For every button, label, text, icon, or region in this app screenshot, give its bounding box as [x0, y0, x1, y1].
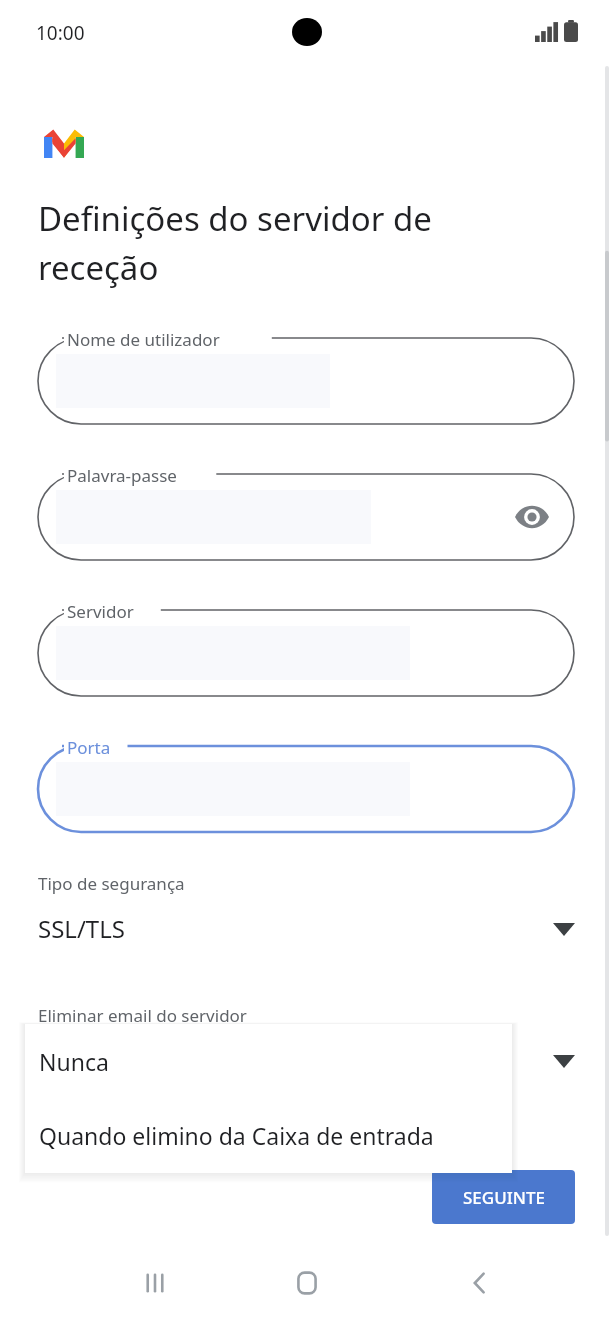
button[interactable]: Nunca — [25, 1024, 512, 1098]
staticText: Porta — [67, 736, 111, 759]
staticText: Quando elimino da Caixa de entrada — [39, 1120, 434, 1151]
button[interactable]: Home — [257, 1236, 357, 1330]
button[interactable]: Tipo de segurança — [38, 872, 575, 962]
staticText: Tipo de segurança — [38, 872, 185, 895]
button[interactable]: SEGUINTE — [432, 1170, 575, 1224]
button[interactable]: Nome de utilizador — [38, 338, 574, 424]
button[interactable]: Back — [430, 1236, 530, 1330]
staticText: Servidor — [67, 600, 134, 623]
staticText: Palavra-passe — [67, 464, 177, 487]
staticText: SEGUINTE — [463, 1186, 545, 1209]
button[interactable]: Recents — [105, 1236, 205, 1330]
staticText: Nome de utilizador — [67, 328, 220, 351]
button[interactable]: Show password — [510, 495, 554, 539]
button[interactable]: Servidor — [38, 610, 574, 696]
button[interactable]: Palavra-passe — [38, 474, 574, 560]
button[interactable]: Porta — [38, 746, 574, 832]
staticText: Definições do servidor de receção — [38, 196, 518, 289]
button[interactable]: Quando elimino da Caixa de entrada — [25, 1098, 512, 1173]
button[interactable]: Eliminar email do servidor — [38, 1004, 575, 1094]
staticText: Nunca — [39, 1046, 109, 1077]
staticText: SSL/TLS — [38, 912, 125, 945]
staticText: 10:00 — [36, 20, 85, 46]
staticText: Eliminar email do servidor — [38, 1004, 247, 1027]
